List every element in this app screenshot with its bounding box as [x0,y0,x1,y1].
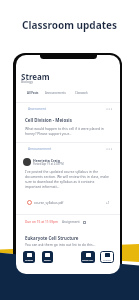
staticText: Stream [21,71,50,82]
staticText: I've posted the updated course syllabus … [25,169,111,189]
staticText: Assignment [62,220,80,224]
staticText: Biology [21,79,33,84]
staticText: Cell Division - Meiosis [25,117,72,123]
staticText: +1 [106,201,110,205]
staticText: Classwork [75,91,88,95]
button[interactable]: Grades [100,251,114,263]
staticText: What would happen to this cell if it wer… [25,126,111,136]
staticText: Grades [103,258,111,261]
staticText: Henrietta Craig [33,158,60,163]
other: More options [106,147,112,151]
staticText: To-Do List [82,258,94,261]
staticText: You can ask them go into out list to do … [25,242,96,247]
staticText: Inbox [44,258,51,261]
button[interactable]: Inbox [42,251,53,263]
button[interactable] [16,104,120,142]
button[interactable]: To-Do List [81,251,95,263]
staticText: Announcement [28,147,52,151]
staticText: course_syllabus.pdf [34,201,64,205]
staticText: Eukaryote Cell Structure [25,235,79,241]
staticText: Classes [25,258,34,261]
staticText: Due on 15 at 11:59pm [25,220,58,224]
staticText: Classroom updates [0,18,139,32]
button[interactable] [16,144,120,214]
staticText: Announcements [45,91,66,95]
staticText: All Posts [27,91,39,95]
other: More options [106,107,112,111]
button[interactable]: Announcements [45,91,66,95]
button[interactable] [16,216,120,248]
button[interactable]: Classes [23,251,35,263]
button[interactable]: All Posts [27,91,39,95]
staticText: Assessment [28,107,46,111]
staticText: Posted Apr 19 at 2:03 PM [33,162,64,166]
button[interactable]: Classwork [75,91,88,95]
